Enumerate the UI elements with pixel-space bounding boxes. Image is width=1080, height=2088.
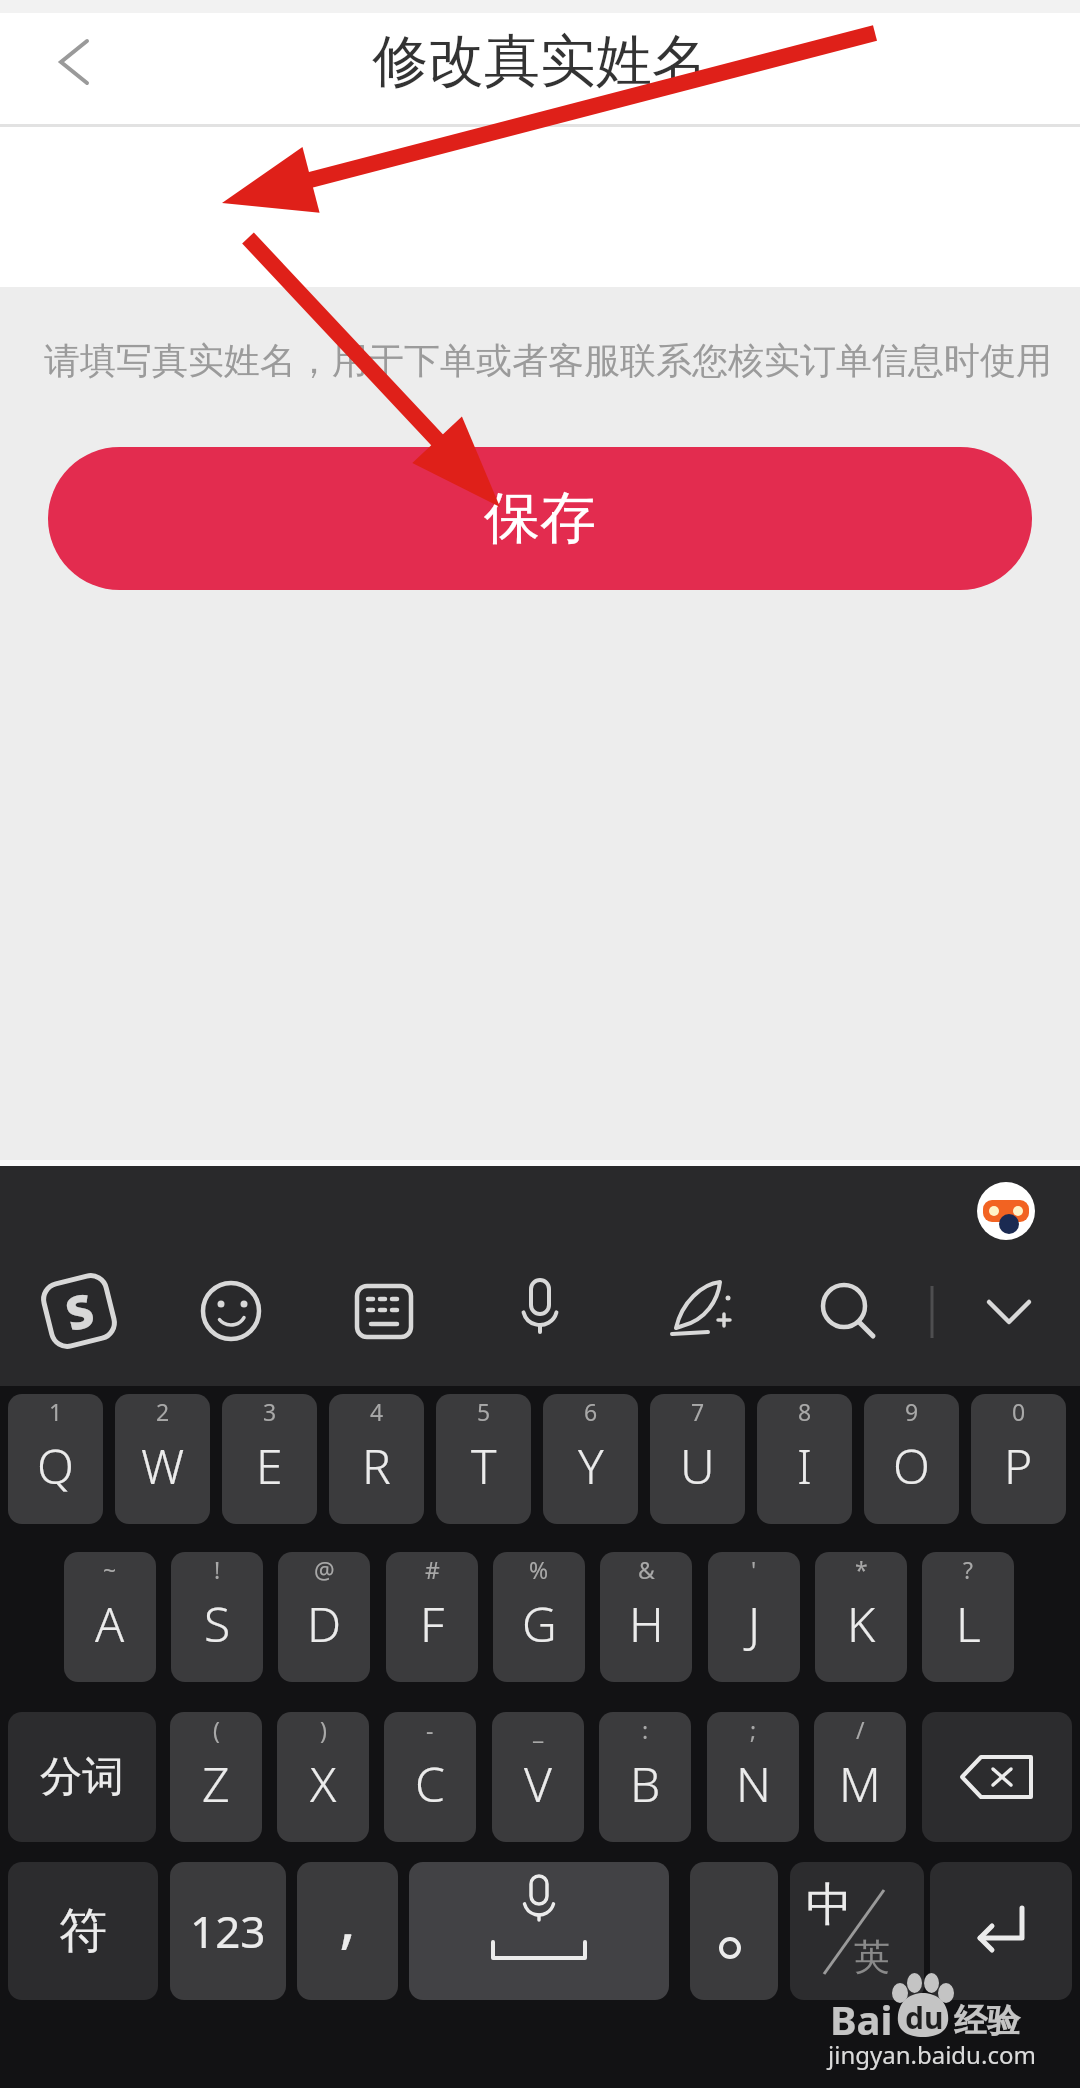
button[interactable]: ,	[297, 1862, 398, 2000]
button[interactable]: ;	[707, 1712, 799, 1842]
staticText: ?	[963, 1554, 973, 1585]
staticText: U	[680, 1433, 715, 1498]
staticText: 9	[905, 1396, 919, 1427]
staticText: E	[256, 1433, 283, 1498]
staticText: 4	[370, 1396, 384, 1427]
staticText: G	[522, 1591, 557, 1656]
button[interactable]	[200, 1280, 262, 1342]
staticText: )	[320, 1714, 327, 1745]
staticText: @	[314, 1554, 335, 1585]
staticText: S	[204, 1591, 231, 1656]
button[interactable]: &	[600, 1552, 692, 1682]
button[interactable]: _	[492, 1712, 584, 1842]
staticText: 8	[798, 1396, 812, 1427]
button[interactable]: )	[277, 1712, 369, 1842]
button[interactable]: -	[384, 1712, 476, 1842]
button[interactable]: /	[814, 1712, 906, 1842]
staticText: :	[642, 1714, 649, 1745]
button[interactable]: 2	[115, 1394, 210, 1524]
button[interactable]: 0	[971, 1394, 1066, 1524]
staticText: 6	[584, 1396, 598, 1427]
staticText: J	[748, 1591, 761, 1656]
staticText: #	[425, 1554, 440, 1585]
button[interactable]: 6	[543, 1394, 638, 1524]
button[interactable]	[818, 1280, 880, 1342]
staticText: ~	[103, 1554, 117, 1585]
button[interactable]	[668, 1276, 734, 1342]
button[interactable]: ~	[64, 1552, 156, 1682]
staticText: jingyan.baidu.com	[828, 2038, 1036, 2071]
staticText: 0	[1012, 1396, 1026, 1427]
button[interactable]: 8	[757, 1394, 852, 1524]
staticText: X	[310, 1751, 337, 1816]
button[interactable]	[512, 1278, 568, 1334]
button[interactable]: 3	[222, 1394, 317, 1524]
staticText: *	[855, 1554, 868, 1585]
staticText: 保存	[484, 483, 596, 554]
button[interactable]: 保存	[48, 447, 1032, 590]
button[interactable]: 4	[329, 1394, 424, 1524]
staticText: 7	[691, 1396, 705, 1427]
button[interactable]: 符	[8, 1862, 158, 2000]
button[interactable]	[922, 1712, 1072, 1842]
staticText: M	[839, 1751, 881, 1816]
staticText: (	[213, 1714, 220, 1745]
button[interactable]: !	[171, 1552, 263, 1682]
staticText: ;	[750, 1714, 757, 1745]
button[interactable]	[409, 1862, 669, 2000]
staticText: V	[524, 1751, 552, 1816]
button[interactable]: 中	[790, 1862, 924, 2000]
button[interactable]	[355, 1282, 415, 1342]
button[interactable]: 5	[436, 1394, 531, 1524]
staticText: H	[629, 1591, 664, 1656]
staticText: N	[736, 1751, 771, 1816]
staticText: C	[415, 1751, 445, 1816]
staticText: 分词	[40, 1751, 124, 1804]
staticText: Bai	[830, 1992, 893, 2046]
staticText: W	[141, 1433, 185, 1498]
button[interactable]: 1	[8, 1394, 103, 1524]
button[interactable]: '	[708, 1552, 800, 1682]
staticText: Z	[202, 1751, 230, 1816]
staticText: 3	[263, 1396, 277, 1427]
button[interactable]: (	[170, 1712, 262, 1842]
staticText: 123	[190, 1901, 266, 1961]
staticText: K	[847, 1591, 876, 1656]
staticText: P	[1004, 1433, 1033, 1498]
button[interactable]: %	[493, 1552, 585, 1682]
staticText: 2	[156, 1396, 170, 1427]
button[interactable]: 123	[170, 1862, 286, 2000]
button[interactable]	[690, 1862, 778, 2000]
staticText: !	[214, 1554, 221, 1585]
button[interactable]: ?	[922, 1552, 1014, 1682]
button[interactable]	[930, 1862, 1072, 2000]
button[interactable]: @	[278, 1552, 370, 1682]
button[interactable]	[982, 1290, 1038, 1346]
staticText: D	[307, 1591, 342, 1656]
staticText: _	[533, 1714, 544, 1745]
staticText: 英	[854, 1934, 890, 1979]
staticText: Q	[37, 1433, 74, 1498]
staticText: 1	[49, 1396, 63, 1427]
button[interactable]: #	[386, 1552, 478, 1682]
staticText: 修改真实姓名	[372, 26, 708, 97]
staticText: du	[905, 1997, 944, 2038]
staticText: L	[956, 1591, 981, 1656]
staticText: 5	[477, 1396, 491, 1427]
button[interactable]: 7	[650, 1394, 745, 1524]
staticText: 符	[59, 1901, 107, 1961]
staticText: A	[95, 1591, 125, 1656]
button[interactable]: 分词	[8, 1712, 156, 1842]
button[interactable]: S	[40, 1272, 118, 1350]
button[interactable]: *	[815, 1552, 907, 1682]
button[interactable]	[974, 1180, 1038, 1244]
staticText: ,	[339, 1874, 357, 1961]
staticText: S	[59, 1277, 100, 1345]
staticText: 请填写真实姓名，用于下单或者客服联系您核实订单信息时使用	[44, 338, 1052, 383]
button[interactable]: 9	[864, 1394, 959, 1524]
staticText: /	[856, 1714, 865, 1745]
button[interactable]: :	[599, 1712, 691, 1842]
button[interactable]	[40, 30, 104, 94]
staticText: O	[893, 1433, 930, 1498]
staticText: 经验	[954, 2000, 1020, 2042]
